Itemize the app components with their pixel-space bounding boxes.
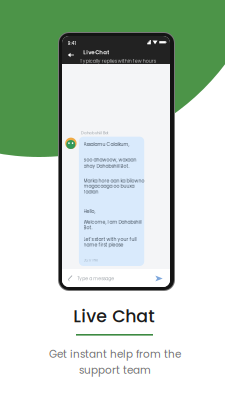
staticText: Typically replies within few hours: [80, 58, 156, 64]
staticText: Hello,: [84, 208, 96, 215]
staticText: Soo dhawoow, waxaan: [84, 157, 137, 163]
staticText: 05:17 PM: [84, 258, 98, 263]
button[interactable]: Send: [62, 36, 170, 287]
staticText: Let's start with your full: [84, 236, 137, 243]
staticText: ahay Dahabshiil Bot.: [84, 163, 130, 169]
staticText: Marka hore aan ka bilowno: [84, 178, 145, 184]
staticText: name first please: [84, 242, 124, 248]
button[interactable]: Back: [62, 36, 170, 287]
staticText: 9:41: [68, 40, 77, 46]
staticText: Get instant help from the: [49, 347, 181, 361]
staticText: Live Chat: [73, 304, 154, 328]
staticText: Welcome, I am Dahabshiil: [84, 219, 142, 225]
staticText: Type a message: [77, 275, 114, 282]
staticText: Live Chat: [83, 49, 109, 56]
staticText: Dahabshiil Bot: [81, 130, 108, 135]
staticText: support team: [79, 363, 151, 377]
staticText: Bot.: [84, 224, 93, 231]
staticText: magacaaga oo buuxa: [84, 183, 135, 189]
staticText: Assalamu Calaikum,: [84, 141, 130, 148]
staticText: fadlan: [84, 189, 99, 195]
